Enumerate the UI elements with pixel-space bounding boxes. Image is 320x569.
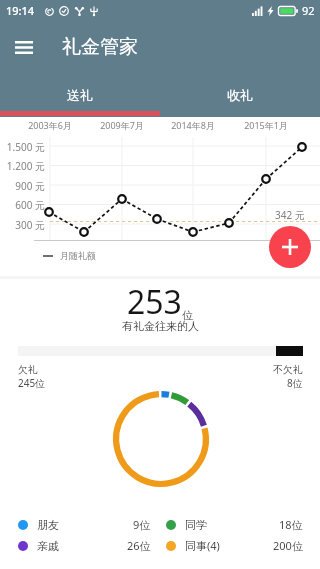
- staticText: 1.200 元: [0, 159, 45, 173]
- staticText: 礼金管家: [62, 35, 138, 59]
- staticText: 收礼: [227, 87, 253, 103]
- staticText: 同学: [185, 518, 207, 532]
- staticText: 92: [302, 3, 315, 18]
- staticText: 2003年6月: [20, 119, 80, 131]
- staticText: 2015年1月: [236, 119, 296, 131]
- staticText: 朋友: [37, 518, 59, 532]
- staticText: 900 元: [0, 179, 45, 193]
- staticText: 18位: [279, 517, 303, 532]
- staticText: 253: [127, 280, 182, 324]
- staticText: 位: [182, 308, 193, 322]
- staticText: 亲戚: [37, 539, 59, 553]
- button[interactable]: 送礼: [0, 74, 160, 115]
- staticText: 8位: [287, 376, 303, 390]
- button[interactable]: 同学: [166, 514, 303, 535]
- staticText: 342 元: [275, 208, 305, 222]
- staticText: 有礼金往来的人: [122, 319, 199, 333]
- staticText: 600 元: [0, 198, 45, 212]
- staticText: 245位: [18, 376, 46, 390]
- staticText: 2009年7月: [92, 119, 152, 131]
- staticText: 300 元: [0, 218, 45, 232]
- button[interactable]: 同事(4): [166, 535, 303, 556]
- staticText: 不欠礼: [273, 363, 303, 376]
- button[interactable]: Open navigation menu: [0, 23, 48, 71]
- button[interactable]: 收礼: [160, 74, 320, 115]
- staticText: 同事(4): [185, 538, 220, 553]
- staticText: 欠礼: [18, 363, 38, 376]
- staticText: 26位: [127, 538, 151, 553]
- staticText: 1.500 元: [0, 140, 45, 154]
- staticText: 2014年8月: [163, 119, 223, 131]
- staticText: 送礼: [67, 87, 93, 103]
- button[interactable]: 亲戚: [18, 535, 151, 556]
- staticText: 月随礼额: [60, 250, 96, 261]
- button[interactable]: Debt ratio bar: [18, 346, 303, 356]
- staticText: 200位: [273, 538, 303, 553]
- staticText: 9位: [133, 517, 151, 532]
- button[interactable]: Add new gift record: [269, 226, 311, 268]
- staticText: 19:14: [6, 3, 35, 18]
- button[interactable]: 朋友: [18, 514, 151, 535]
